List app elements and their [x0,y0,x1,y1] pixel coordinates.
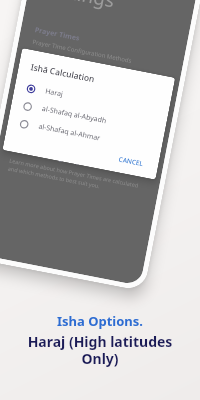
button[interactable]: al-Shafaq al-Abyadh [22,99,156,137]
staticText: Learn more about how Prayer Times are ca… [7,157,148,199]
staticText: Haraj (High latitudes Only) [0,332,200,368]
staticText: Ishā Calculation [30,61,96,85]
staticText: Prayer Times [34,25,81,44]
staticText: Understanding Prayer Times [11,144,111,173]
button[interactable]: Haraj [26,82,159,119]
staticText: Prayer Time Configuration Methods [32,38,132,65]
staticText: Isha Options. [57,312,143,330]
staticText: Settings [41,0,117,14]
staticText: Haraj [44,86,64,100]
button[interactable]: CANCEL [112,151,150,172]
staticText: al-Shafaq al-Ahmar [38,122,101,143]
staticText: CANCEL [118,154,144,168]
button[interactable]: al-Shafaq al-Ahmar [19,117,152,154]
staticText: al-Shafaq al-Abyadh [41,104,108,126]
